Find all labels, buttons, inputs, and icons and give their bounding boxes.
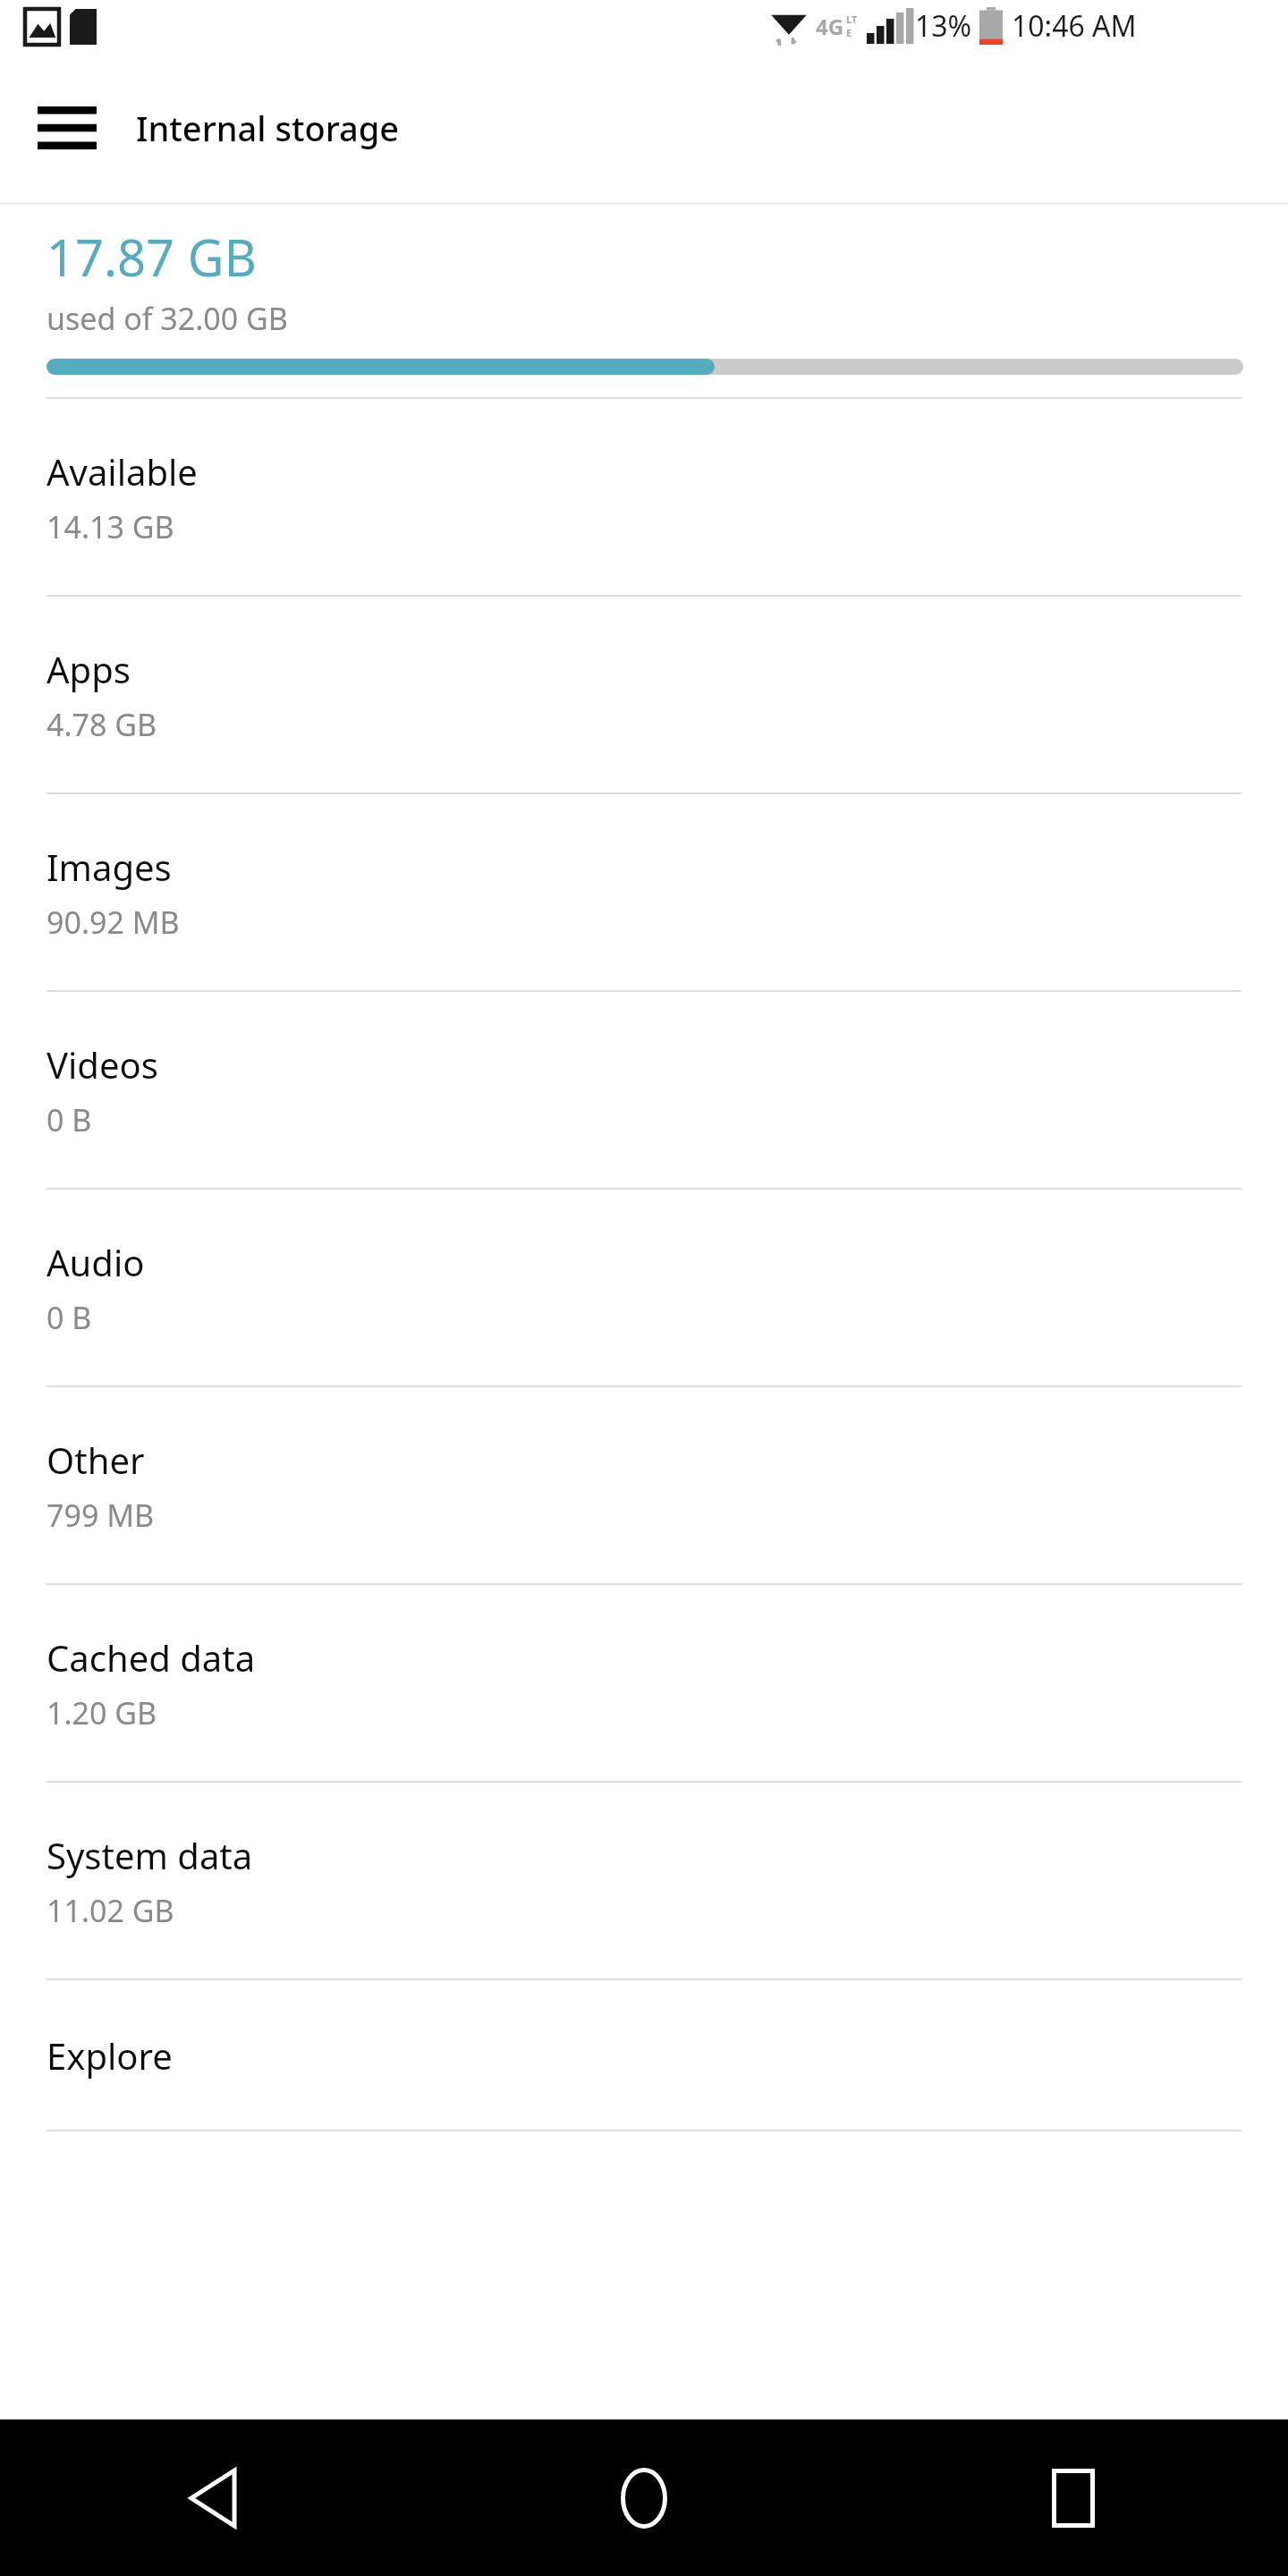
staticText: 13%	[915, 6, 972, 46]
staticText: 1.20 GB	[47, 1692, 157, 1733]
staticText: 10:46 AM	[1012, 6, 1137, 46]
staticText: Images	[47, 843, 172, 891]
button[interactable]: Recent apps	[859, 2419, 1288, 2576]
button[interactable]: Apps	[0, 597, 1288, 792]
button[interactable]: Home	[429, 2419, 859, 2576]
staticText: used of 32.00 GB	[47, 298, 288, 339]
staticText: System data	[47, 1831, 253, 1879]
staticText: Explore	[47, 2031, 173, 2080]
staticText: Cached data	[47, 1633, 256, 1682]
staticText: 11.02 GB	[47, 1890, 174, 1931]
staticText: 4.78 GB	[47, 704, 157, 745]
staticText: 0 B	[47, 1297, 92, 1338]
staticText: 14.13 GB	[47, 506, 174, 547]
staticText: 0 B	[47, 1099, 92, 1140]
staticText: 4G	[816, 12, 844, 41]
button[interactable]: Videos	[0, 992, 1288, 1188]
staticText: E	[846, 26, 852, 39]
button[interactable]: Other	[0, 1387, 1288, 1583]
staticText: 799 MB	[47, 1495, 155, 1536]
button[interactable]: System data	[0, 1783, 1288, 1979]
staticText: Apps	[47, 645, 131, 693]
button[interactable]: Explore	[0, 1980, 1288, 2130]
staticText: Available	[47, 447, 198, 496]
button[interactable]: Available	[0, 399, 1288, 595]
staticText: Audio	[47, 1238, 145, 1286]
button[interactable]: Images	[0, 794, 1288, 990]
staticText: Internal storage	[136, 105, 400, 151]
staticText: Videos	[47, 1040, 158, 1089]
staticText: 90.92 MB	[47, 902, 180, 943]
button[interactable]: Cached data	[0, 1585, 1288, 1781]
button[interactable]: Audio	[0, 1190, 1288, 1385]
staticText: LT	[846, 13, 858, 26]
staticText: Other	[47, 1436, 145, 1484]
staticText: 17.87 GB	[47, 223, 257, 291]
button[interactable]: Open navigation menu	[14, 75, 120, 181]
button[interactable]: Back	[0, 2419, 429, 2576]
